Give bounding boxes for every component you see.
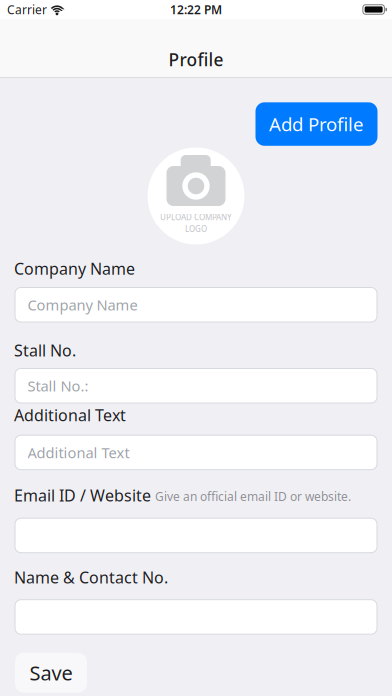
button[interactable]: Additional Text [15,435,377,470]
button[interactable]: Email ID / Website [15,518,377,553]
staticText: Stall No. [14,340,76,361]
staticText: Company Name [27,295,137,314]
staticText: Save [29,659,72,686]
staticText: Name & Contact No. [14,567,168,588]
button[interactable]: Name & Contact No. [15,600,377,634]
staticText: 12:22 PM [170,1,222,17]
button[interactable]: Save [15,653,87,693]
staticText: Profile [168,48,223,71]
staticText: Company Name [14,258,135,279]
staticText: Email ID / Website [14,485,151,506]
staticText: Add Profile [269,112,364,136]
staticText: Give an official email ID or website. [155,488,351,504]
staticText: Additional Text [14,404,126,426]
staticText: Carrier [7,1,47,17]
staticText: Stall No.: [27,376,88,395]
button[interactable]: Upload company logo [147,147,244,244]
button[interactable]: Company Name [15,287,377,322]
button[interactable]: Stall No.: [15,368,377,403]
staticText: LOGO [185,223,207,234]
staticText: Additional Text [27,443,129,462]
staticText: UPLOAD COMPANY [160,212,232,222]
button[interactable]: Add Profile [255,102,377,146]
